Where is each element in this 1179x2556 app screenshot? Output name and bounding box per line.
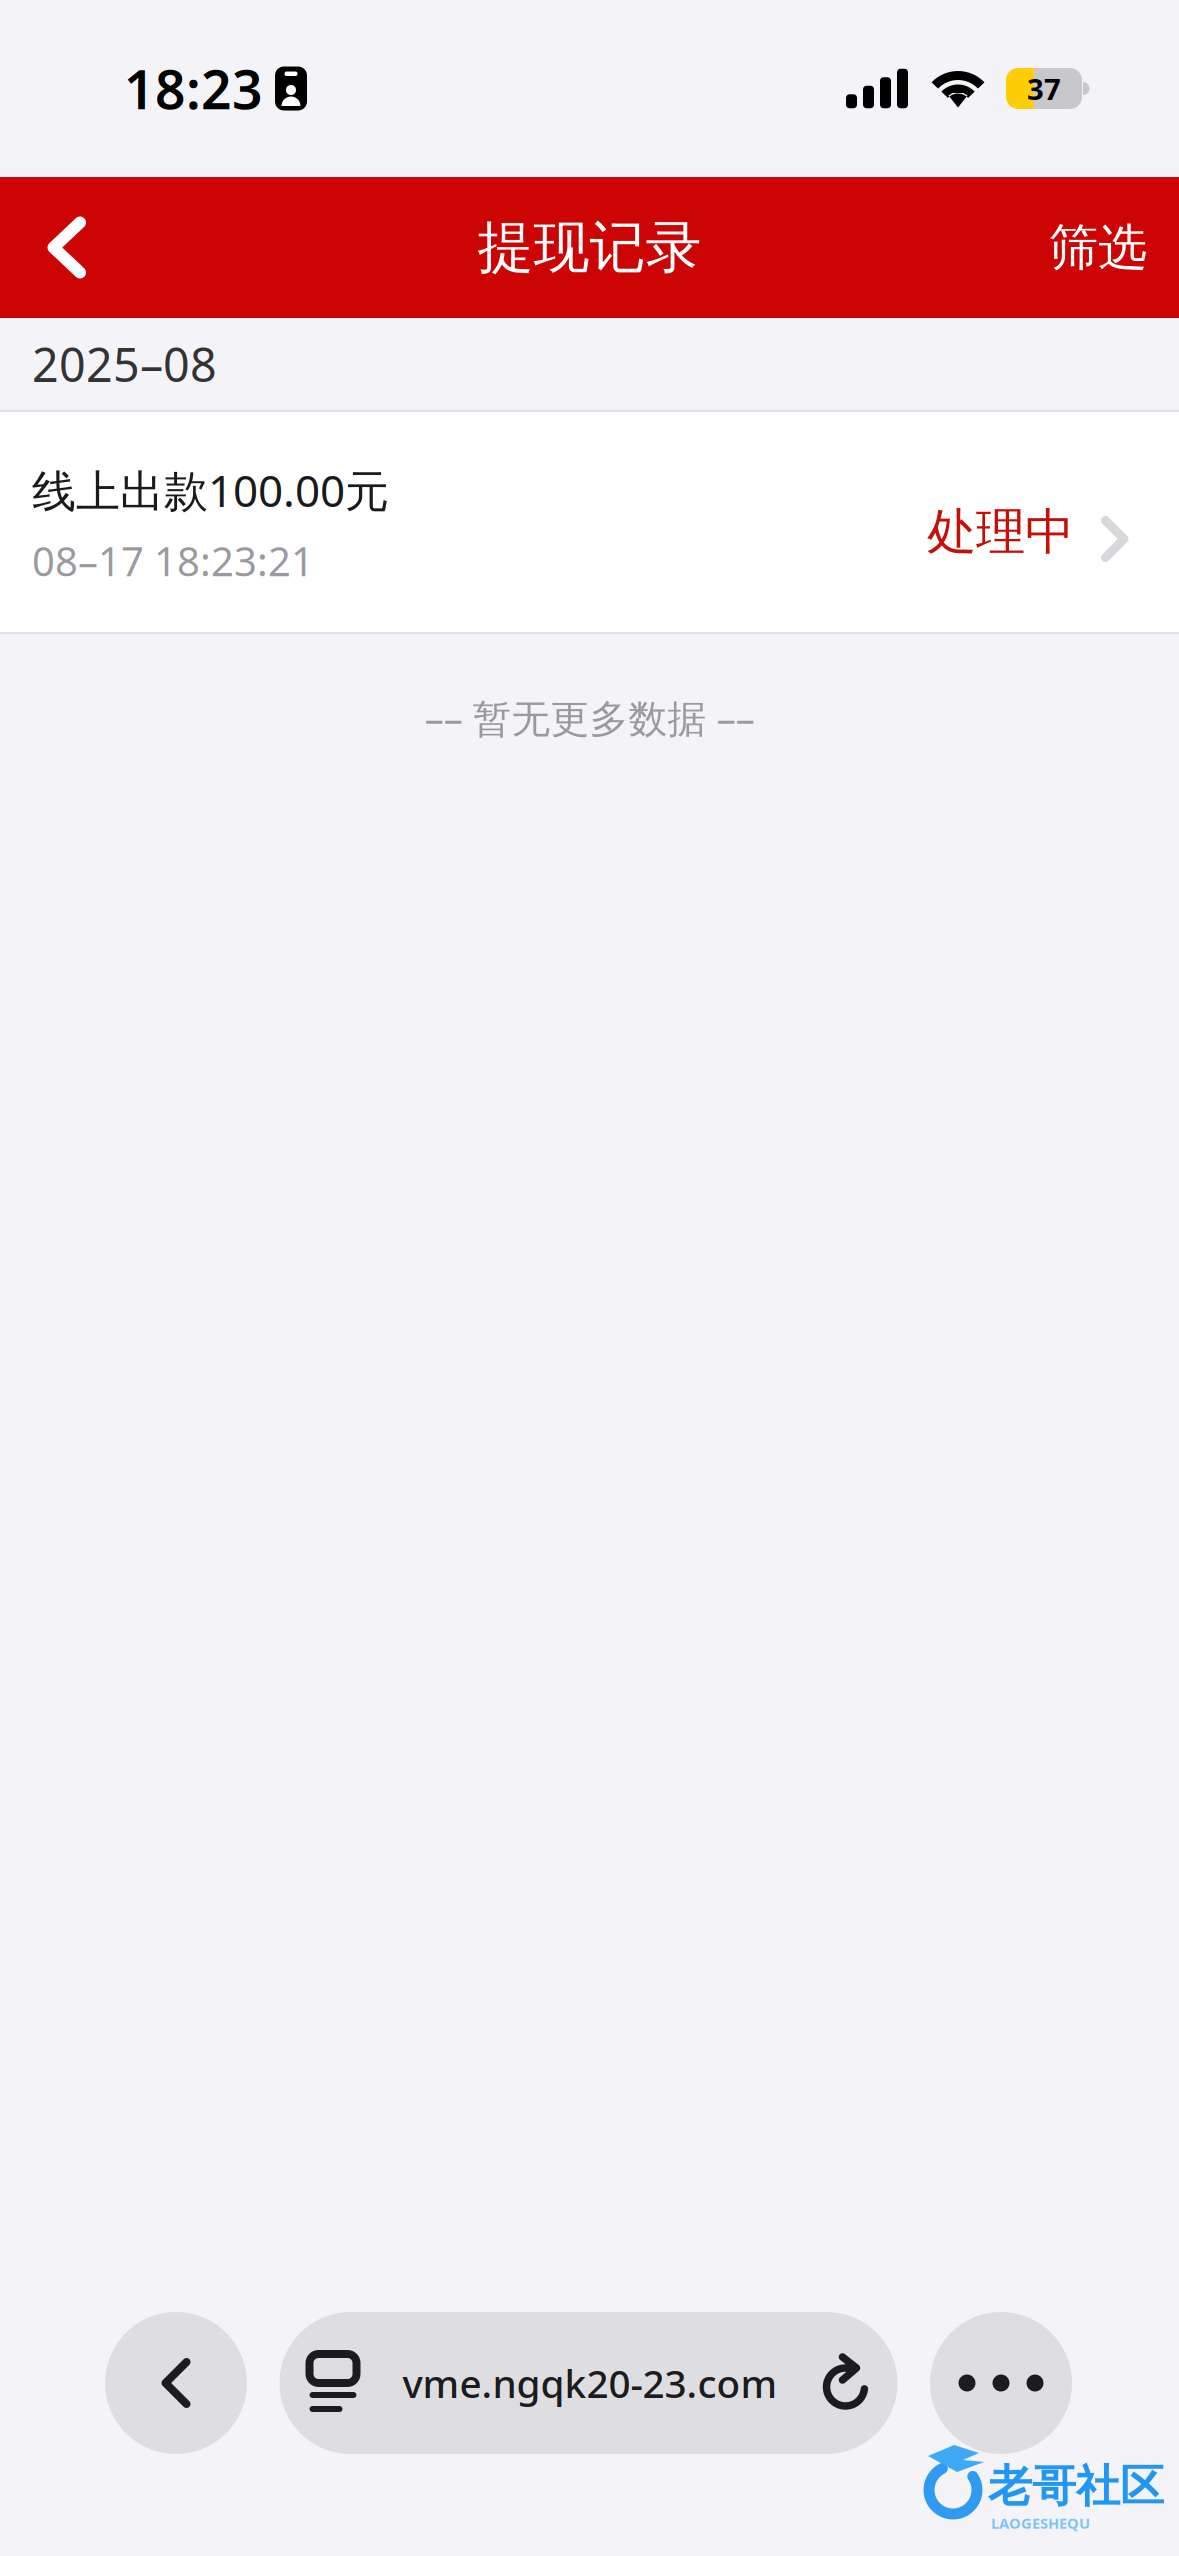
button[interactable]: vme.ngqk20-23.com <box>279 2312 897 2454</box>
staticText: 处理中 <box>927 502 1074 562</box>
staticText: –– 暂无更多数据 –– <box>424 692 754 743</box>
staticText: 线上出款100.00元 <box>32 461 389 519</box>
button[interactable]: 筛选 <box>1019 177 1179 318</box>
button[interactable]: Back <box>105 2312 247 2454</box>
button[interactable]: More <box>930 2312 1072 2454</box>
staticText: 老哥社区 <box>988 2459 1164 2513</box>
staticText: 提现记录 <box>477 213 701 282</box>
staticText: 筛选 <box>1049 217 1147 278</box>
button[interactable]: 线上出款100.00元 <box>0 412 1179 632</box>
staticText: 2025–08 <box>32 333 217 395</box>
staticText: vme.ngqk20-23.com <box>402 2357 777 2409</box>
staticText: 18:23 <box>124 53 263 124</box>
staticText: 08–17 18:23:21 <box>32 534 314 587</box>
staticText: LAOGESHEQU <box>991 2513 1090 2533</box>
button[interactable]: Back <box>0 177 122 318</box>
staticText: 37 <box>1027 69 1061 108</box>
